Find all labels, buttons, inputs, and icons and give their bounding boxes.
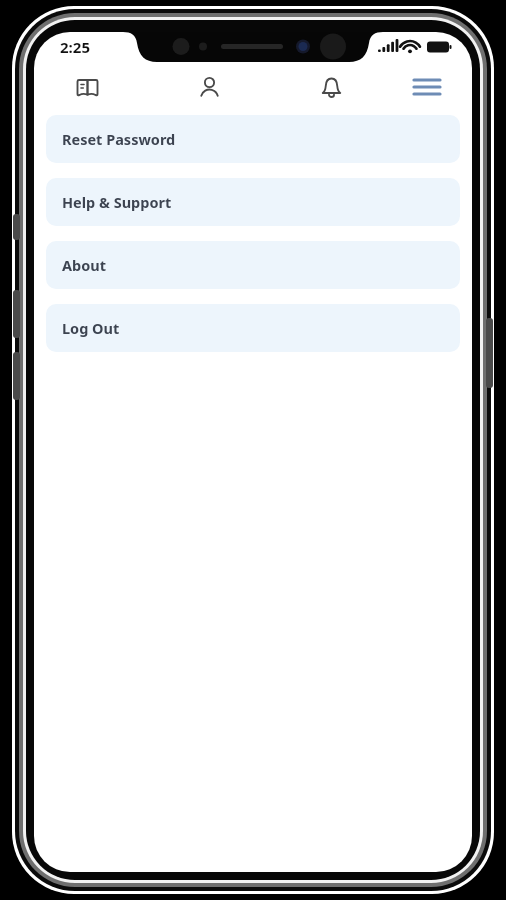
staticText: Reset Password	[62, 129, 176, 149]
button[interactable]: Library	[70, 70, 104, 104]
button[interactable]: Log Out	[46, 304, 460, 352]
button[interactable]: Reset Password	[46, 115, 460, 163]
button[interactable]: About	[46, 241, 460, 289]
button[interactable]: Menu	[410, 70, 444, 104]
staticText: 2:25	[60, 37, 90, 57]
staticText: Log Out	[62, 318, 120, 338]
button[interactable]: Help & Support	[46, 178, 460, 226]
staticText: Help & Support	[62, 192, 172, 212]
button[interactable]: Notifications	[314, 70, 348, 104]
staticText: About	[62, 255, 106, 275]
button[interactable]: Profile	[192, 70, 226, 104]
